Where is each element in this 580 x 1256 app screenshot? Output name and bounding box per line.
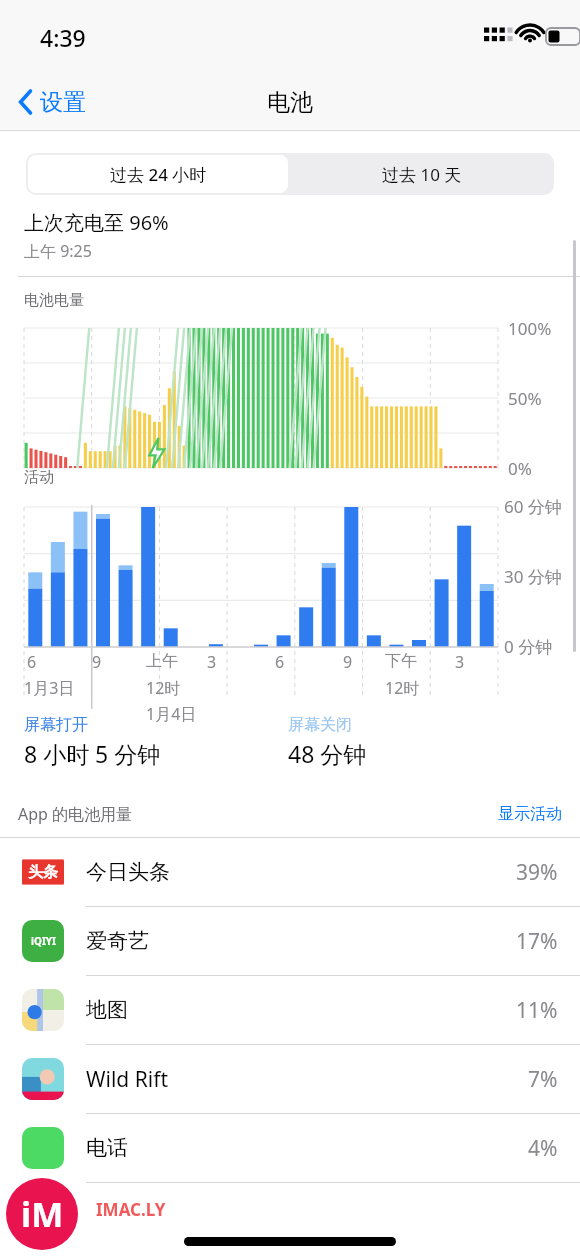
staticText: 屏幕关闭 — [288, 715, 352, 735]
staticText: 8 小时 5 分钟 — [24, 738, 161, 769]
staticText: 12时 — [385, 677, 420, 699]
staticText: 30 分钟 — [504, 565, 562, 588]
staticText: 3 — [207, 651, 217, 673]
staticText: 显示活动 — [498, 804, 562, 824]
staticText: 上午 — [146, 651, 178, 671]
staticText: Wild Rift — [86, 1065, 169, 1094]
staticText: 电池 — [267, 88, 313, 117]
staticText: iM — [21, 1191, 64, 1237]
button[interactable]: iQIYI — [0, 907, 580, 975]
staticText: 9 — [92, 651, 102, 673]
staticText: 4% — [528, 1134, 558, 1163]
button[interactable]: 地图 — [0, 976, 580, 1044]
staticText: iQIYI — [31, 934, 56, 948]
staticText: 12时 — [146, 677, 181, 699]
button[interactable]: 电话 — [0, 1114, 580, 1182]
staticText: 上次充电至 96% — [24, 209, 169, 236]
staticText: 活动 — [24, 468, 54, 487]
button[interactable]: 头条 — [0, 838, 580, 906]
staticText: 设置 — [40, 88, 86, 117]
staticText: 17% — [516, 927, 558, 956]
staticText: 4:39 — [40, 22, 86, 53]
button[interactable]: 设置 — [14, 80, 90, 124]
staticText: 11% — [516, 996, 558, 1025]
staticText: 3 — [455, 651, 465, 673]
staticText: 地图 — [86, 997, 128, 1023]
staticText: 今日头条 — [86, 859, 170, 885]
staticText: 39% — [516, 858, 558, 887]
staticText: 上午 9:25 — [24, 240, 92, 262]
staticText: 过去 10 天 — [382, 163, 462, 186]
staticText: 6 — [27, 651, 37, 673]
staticText: 0 分钟 — [504, 635, 553, 658]
staticText: 过去 24 小时 — [110, 163, 207, 186]
staticText: 60 分钟 — [504, 495, 562, 518]
staticText: 100% — [508, 317, 552, 340]
button[interactable]: 显示活动 — [498, 804, 562, 824]
staticText: 50% — [508, 387, 542, 410]
staticText: 0% — [508, 457, 532, 480]
button[interactable]: 过去 24 小时 — [28, 155, 288, 193]
staticText: 1月3日 — [24, 677, 75, 699]
staticText: 48 分钟 — [288, 738, 367, 769]
staticText: 下午 — [385, 651, 417, 671]
staticText: 头条 — [28, 863, 58, 882]
staticText: 电话 — [86, 1135, 128, 1161]
staticText: IMAC.LY — [96, 1198, 166, 1221]
staticText: 电池电量 — [24, 291, 84, 310]
staticText: 7% — [528, 1065, 558, 1094]
button[interactable]: 过去 10 天 — [290, 153, 554, 195]
staticText: 6 — [275, 651, 285, 673]
staticText: 屏幕打开 — [24, 715, 88, 735]
staticText: App 的电池用量 — [18, 803, 133, 825]
staticText: 1月4日 — [146, 703, 197, 725]
staticText: 9 — [343, 651, 353, 673]
button[interactable]: Wild Rift — [0, 1045, 580, 1113]
staticText: 爱奇艺 — [86, 928, 149, 954]
